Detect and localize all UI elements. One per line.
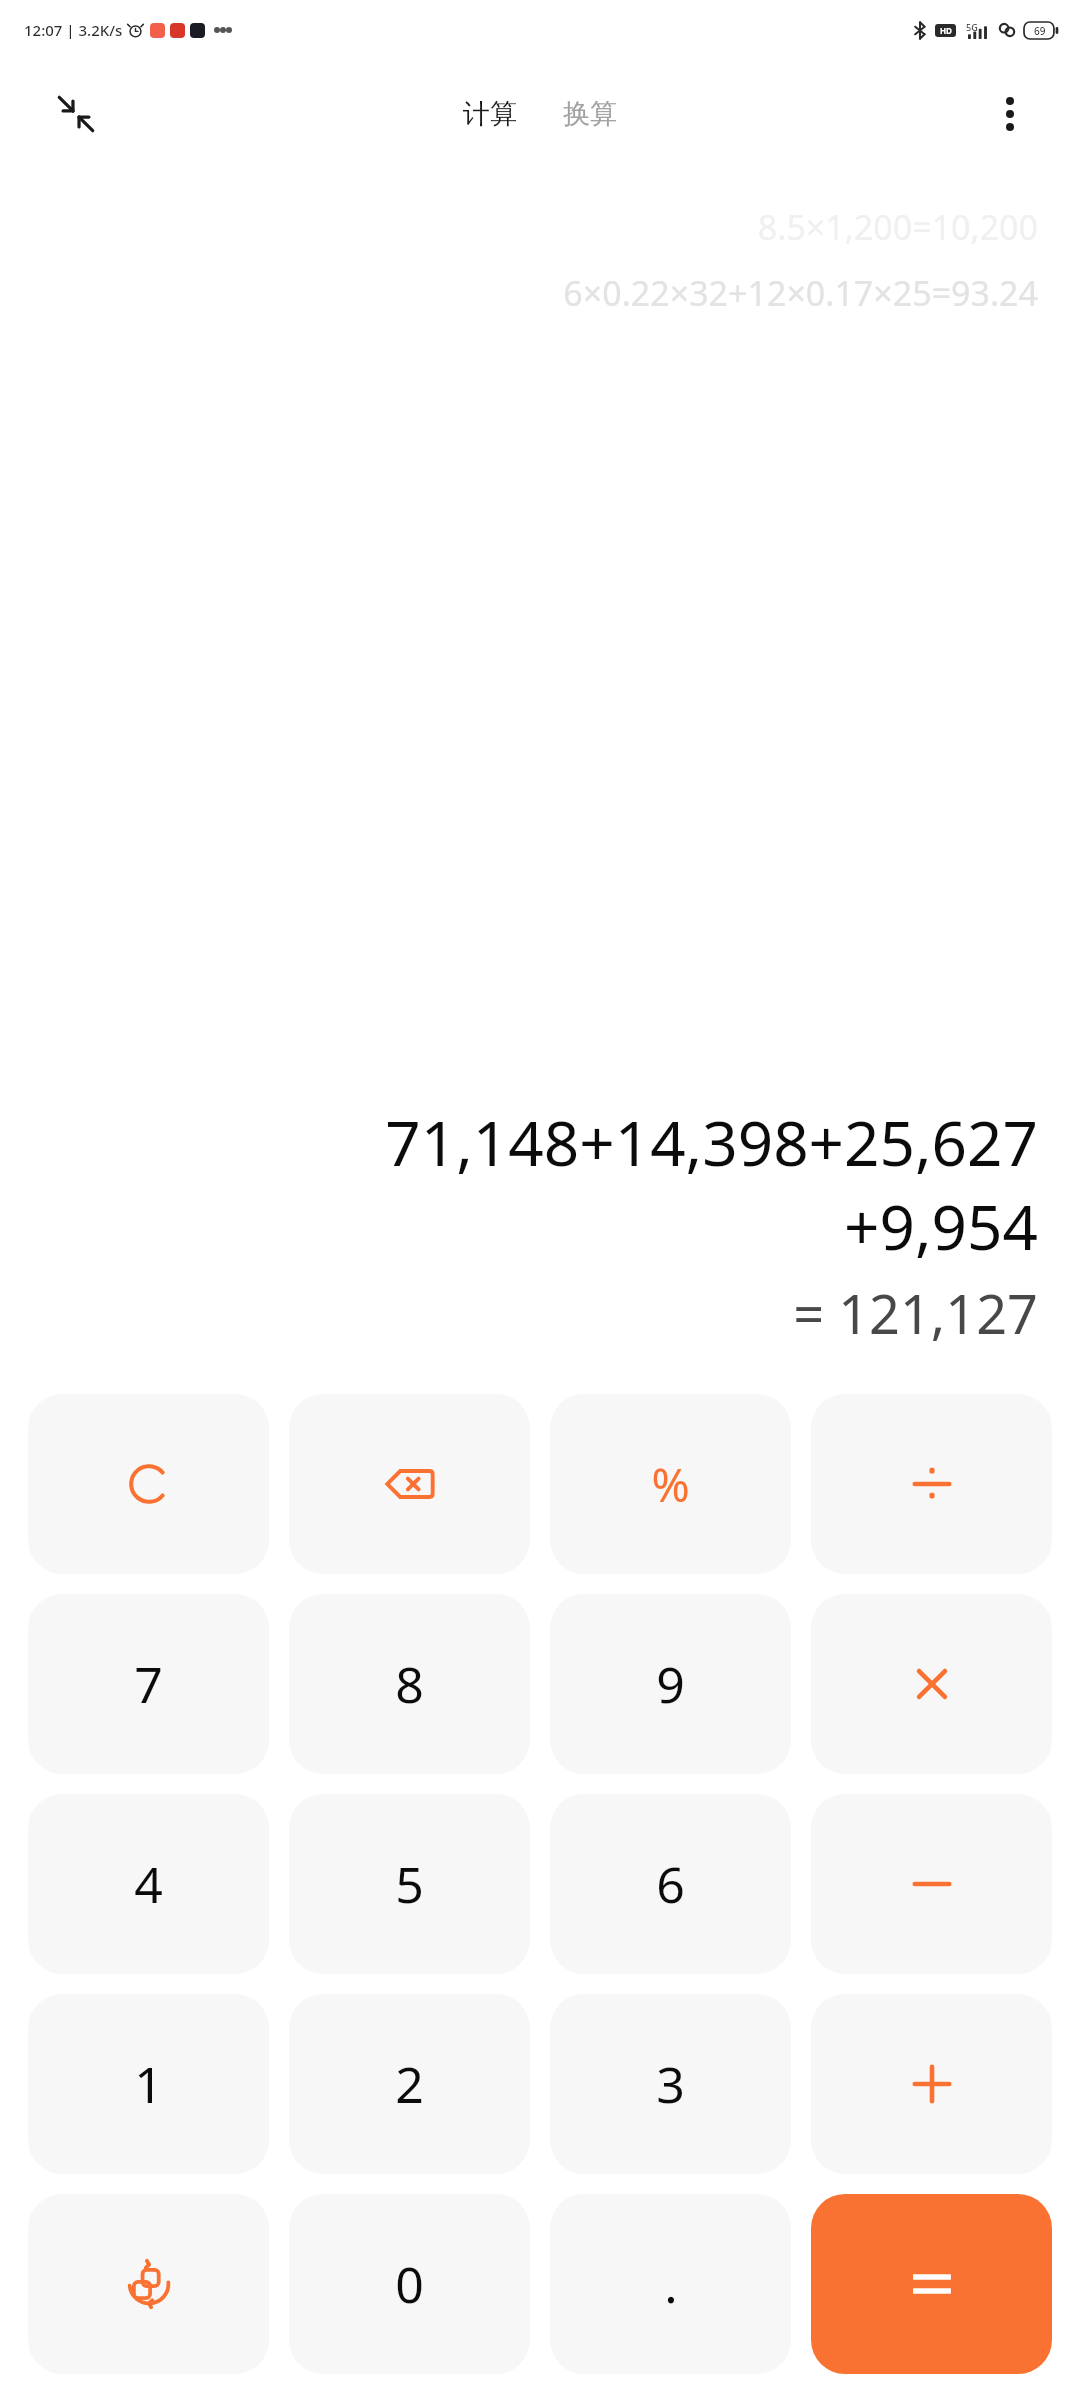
staticText: 6 xyxy=(656,1850,685,1918)
button[interactable]: Collapse xyxy=(40,78,112,150)
button[interactable]: Equals xyxy=(811,2194,1052,2374)
button[interactable]: 0 xyxy=(289,2194,530,2374)
staticText: 换算 xyxy=(563,97,617,131)
staticText: 6×0.22×32+12×0.17×25=93.24 xyxy=(563,270,1038,316)
staticText: 0 xyxy=(395,2250,424,2318)
button[interactable]: Clear xyxy=(28,1394,269,1574)
staticText: 2 xyxy=(395,2050,424,2118)
staticText: . xyxy=(664,2250,678,2318)
staticText: 7 xyxy=(134,1650,163,1718)
button[interactable]: Backspace xyxy=(289,1394,530,1574)
staticText: HD xyxy=(940,25,952,36)
staticText: 9 xyxy=(656,1650,685,1718)
button[interactable]: 4 xyxy=(28,1794,269,1974)
button[interactable]: 换算 xyxy=(553,91,627,137)
staticText: 5 xyxy=(395,1850,424,1918)
button[interactable]: Plus xyxy=(811,1994,1052,2174)
button[interactable]: 5 xyxy=(289,1794,530,1974)
button[interactable]: Multiply xyxy=(811,1594,1052,1774)
staticText: 5G xyxy=(966,21,978,33)
staticText: 8.5×1,200=10,200 xyxy=(757,204,1038,250)
button[interactable]: 8 xyxy=(289,1594,530,1774)
staticText: 1 xyxy=(134,2050,163,2118)
staticText: 4 xyxy=(134,1850,163,1918)
staticText: = 121,127 xyxy=(793,1276,1038,1350)
staticText: 8 xyxy=(395,1650,424,1718)
button[interactable]: Percent xyxy=(550,1394,791,1574)
button[interactable]: 计算 xyxy=(453,91,527,137)
button[interactable]: 3 xyxy=(550,1994,791,2174)
staticText: 71,148+14,398+25,627 xyxy=(385,1100,1038,1184)
staticText: 3 xyxy=(656,2050,685,2118)
button[interactable]: 2 xyxy=(289,1994,530,2174)
button[interactable]: 1 xyxy=(28,1994,269,2174)
staticText: 69 xyxy=(1034,24,1046,38)
button[interactable]: 7 xyxy=(28,1594,269,1774)
button[interactable]: Divide xyxy=(811,1394,1052,1574)
staticText: +9,954 xyxy=(844,1184,1038,1268)
button[interactable]: 6 xyxy=(550,1794,791,1974)
button[interactable]: 9 xyxy=(550,1594,791,1774)
staticText: 12:07 | 3.2K/s xyxy=(24,20,123,40)
button[interactable]: More options xyxy=(976,80,1044,148)
staticText: % xyxy=(651,1453,690,1516)
button[interactable]: Convert xyxy=(28,2194,269,2374)
button[interactable]: Decimal point xyxy=(550,2194,791,2374)
staticText: 计算 xyxy=(463,97,517,131)
button[interactable]: Minus xyxy=(811,1794,1052,1974)
